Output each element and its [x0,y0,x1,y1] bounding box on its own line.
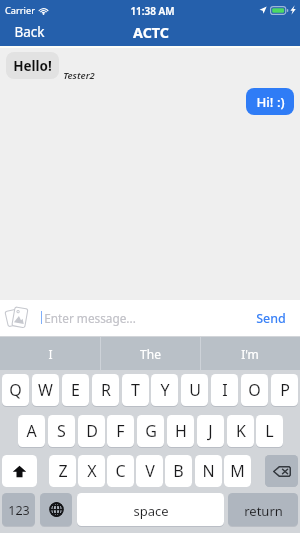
staticText: I [48,346,53,362]
staticText: Z [58,460,68,482]
staticText: E [71,379,80,401]
staticText: J [208,420,213,442]
button[interactable]: The [100,337,200,370]
staticText: Y [160,379,170,401]
staticText: Hi! :) [256,93,285,111]
staticText: T [131,379,140,401]
button[interactable]: Hi! :) [246,88,294,115]
staticText: M [230,460,245,482]
staticText: B [173,460,184,482]
button[interactable]: Send [248,300,300,335]
button[interactable]: Hello! [6,52,59,79]
button[interactable]: Z [49,455,76,487]
staticText: K [236,420,246,442]
staticText: S [57,420,66,442]
staticText: Back [14,23,45,41]
staticText: return [244,502,283,520]
button[interactable]: Q [2,374,29,406]
button[interactable]: Delete [265,455,298,487]
staticText: D [86,420,98,442]
button[interactable]: C [107,455,134,487]
button[interactable]: T [122,374,149,406]
button[interactable]: P [271,374,298,406]
staticText: C [115,460,126,482]
staticText: 123 [8,502,30,519]
staticText: X [87,460,97,482]
button[interactable]: O [241,374,268,406]
button[interactable]: S [48,415,75,447]
button[interactable]: I'm [200,337,300,370]
staticText: G [145,420,157,442]
staticText: Enter message... [44,310,136,326]
staticText: P [280,379,290,401]
button[interactable]: N [195,455,222,487]
staticText: Q [9,379,22,401]
button[interactable]: Shift [2,455,37,487]
staticText: A [26,420,37,442]
staticText: V [145,460,155,482]
button[interactable]: X [78,455,105,487]
button[interactable]: U [181,374,208,406]
button[interactable]: return [228,493,298,526]
button[interactable]: 123 [2,493,35,526]
staticText: 11:38 AM [130,4,175,18]
staticText: space [133,502,169,520]
staticText: Send [256,310,286,327]
button[interactable]: H [167,415,194,447]
staticText: Hello! [13,57,52,75]
button[interactable]: space [77,493,224,526]
button[interactable]: E [62,374,89,406]
button[interactable]: K [227,415,254,447]
staticText: O [248,379,261,401]
button[interactable]: W [32,374,59,406]
staticText: U [189,379,201,401]
button[interactable]: M [224,455,251,487]
staticText: W [38,379,53,401]
button[interactable]: V [136,455,163,487]
staticText: H [175,420,187,442]
button[interactable]: F [107,415,134,447]
staticText: I [222,379,228,401]
staticText: Tester2 [63,69,95,82]
button[interactable]: J [197,415,224,447]
staticText: L [265,420,274,442]
button[interactable]: G [137,415,164,447]
button[interactable]: I [0,337,100,370]
staticText: I'm [241,346,259,362]
button[interactable]: B [165,455,192,487]
staticText: Carrier [5,4,35,17]
button[interactable]: L [256,415,283,447]
button[interactable]: R [92,374,119,406]
button[interactable]: Y [151,374,178,406]
staticText: F [116,420,125,442]
button[interactable]: D [78,415,105,447]
button[interactable]: Attach photo [5,305,30,330]
button[interactable]: A [18,415,45,447]
staticText: N [202,460,215,482]
button[interactable]: Switch keyboard [40,493,72,526]
button[interactable]: Back [0,20,56,46]
staticText: The [140,346,161,362]
button[interactable]: I [211,374,238,406]
staticText: ACTC [133,23,169,42]
staticText: R [101,379,111,401]
